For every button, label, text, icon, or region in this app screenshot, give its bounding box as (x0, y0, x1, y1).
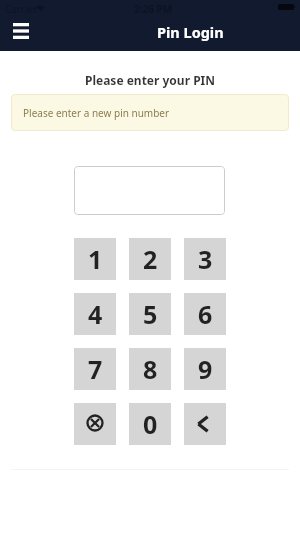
staticText: Pin Login (157, 22, 224, 42)
button[interactable]: Menu (0, 18, 41, 51)
button[interactable]: 1 (74, 238, 116, 280)
staticText: 4 (88, 297, 103, 331)
staticText: 2 (143, 242, 158, 276)
button[interactable]: Backspace (184, 403, 226, 445)
staticText: 8 (143, 352, 158, 386)
staticText: 7 (88, 352, 103, 386)
button[interactable]: 3 (184, 238, 226, 280)
button[interactable]: 9 (184, 348, 226, 390)
staticText: 2:26 PM (134, 2, 173, 16)
staticText: 3 (198, 242, 213, 276)
staticText: 9 (198, 352, 213, 386)
button[interactable]: 5 (129, 293, 171, 335)
button[interactable]: 0 (129, 403, 171, 445)
button[interactable]: 2 (129, 238, 171, 280)
staticText: 1 (88, 242, 103, 276)
staticText: Please enter a new pin number (23, 106, 170, 120)
button[interactable]: 6 (184, 293, 226, 335)
staticText: Please enter your PIN (0, 72, 300, 88)
staticText: 5 (143, 297, 158, 331)
staticText: 6 (198, 297, 213, 331)
button[interactable]: 8 (129, 348, 171, 390)
button[interactable]: 7 (74, 348, 116, 390)
button[interactable]: Clear (74, 403, 116, 445)
button[interactable]: 4 (74, 293, 116, 335)
staticText: 0 (143, 407, 158, 441)
button[interactable]: PIN input (74, 166, 225, 215)
